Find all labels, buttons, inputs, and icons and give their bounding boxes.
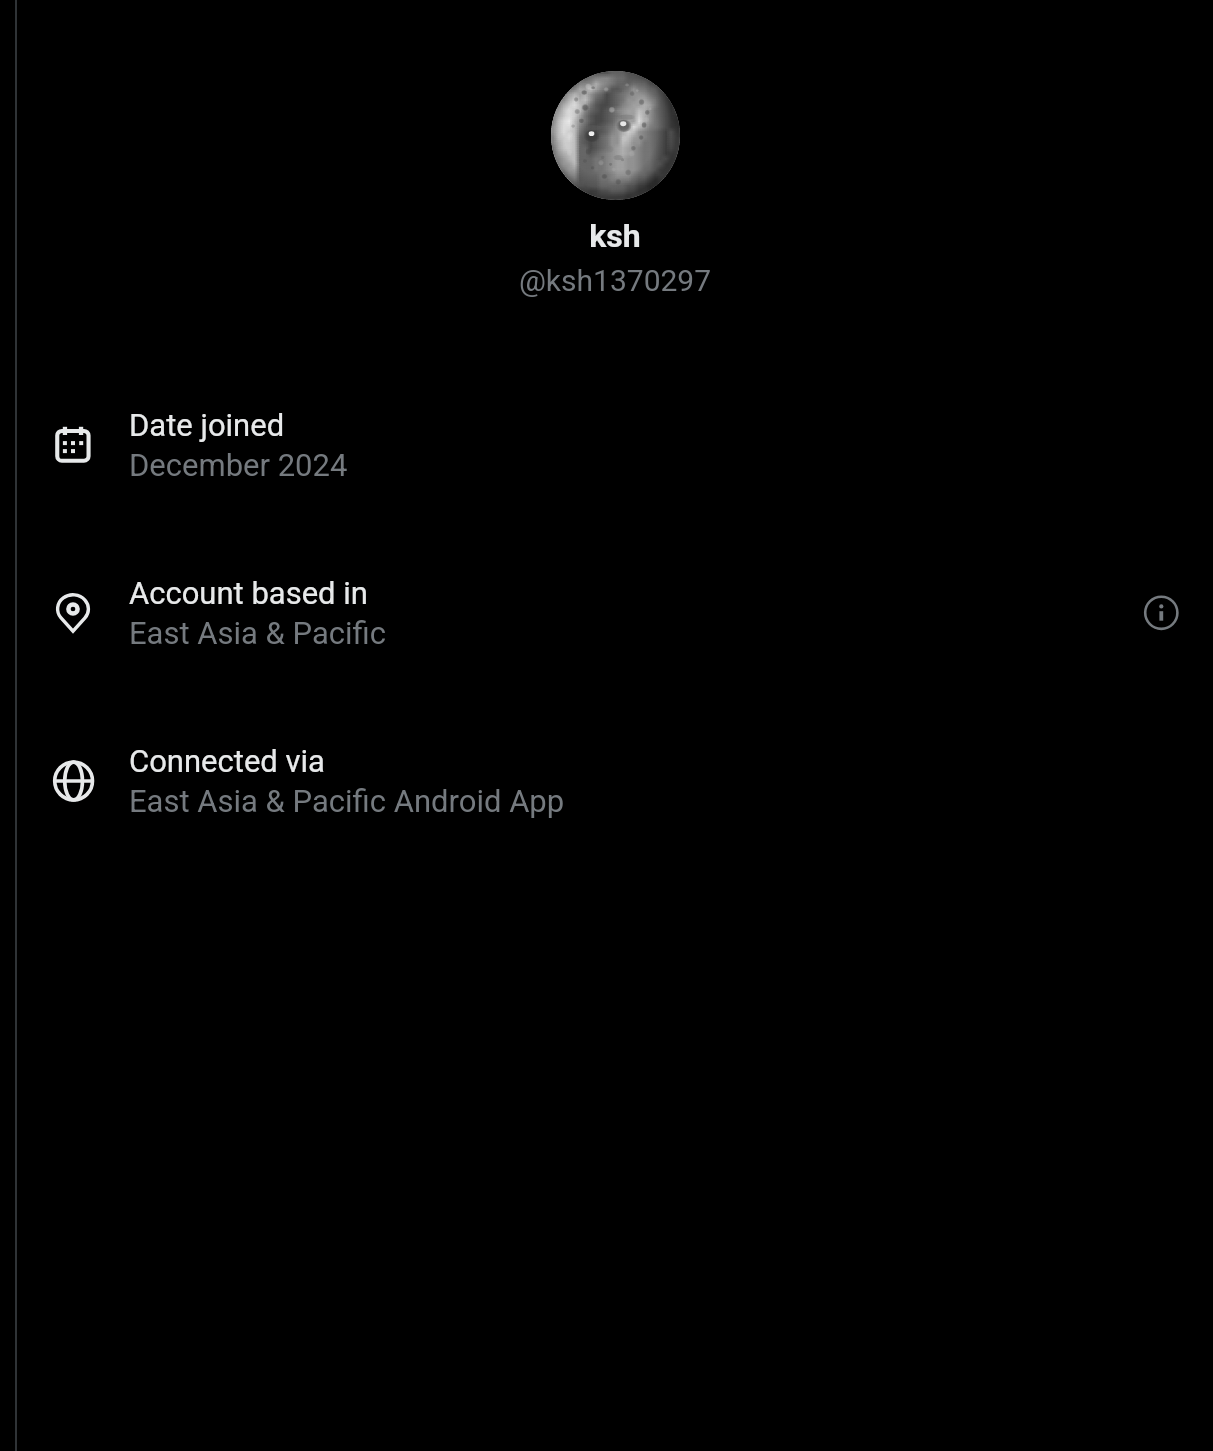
staticText: ksh [17,217,1213,255]
button[interactable]: Date joined [0,379,1213,491]
staticText: December 2024 [129,447,348,483]
staticText: East Asia & Pacific [129,615,387,651]
staticText: Date joined [129,407,285,443]
button[interactable]: Connected via [0,715,1213,827]
staticText: @ksh1370297 [17,263,1213,298]
staticText: East Asia & Pacific Android App [129,783,565,819]
button[interactable]: Profile photo [551,71,680,200]
button[interactable]: More information [1137,588,1185,636]
staticText: Account based in [129,575,368,611]
button[interactable]: Account based in [0,547,1213,659]
staticText: Connected via [129,743,325,779]
